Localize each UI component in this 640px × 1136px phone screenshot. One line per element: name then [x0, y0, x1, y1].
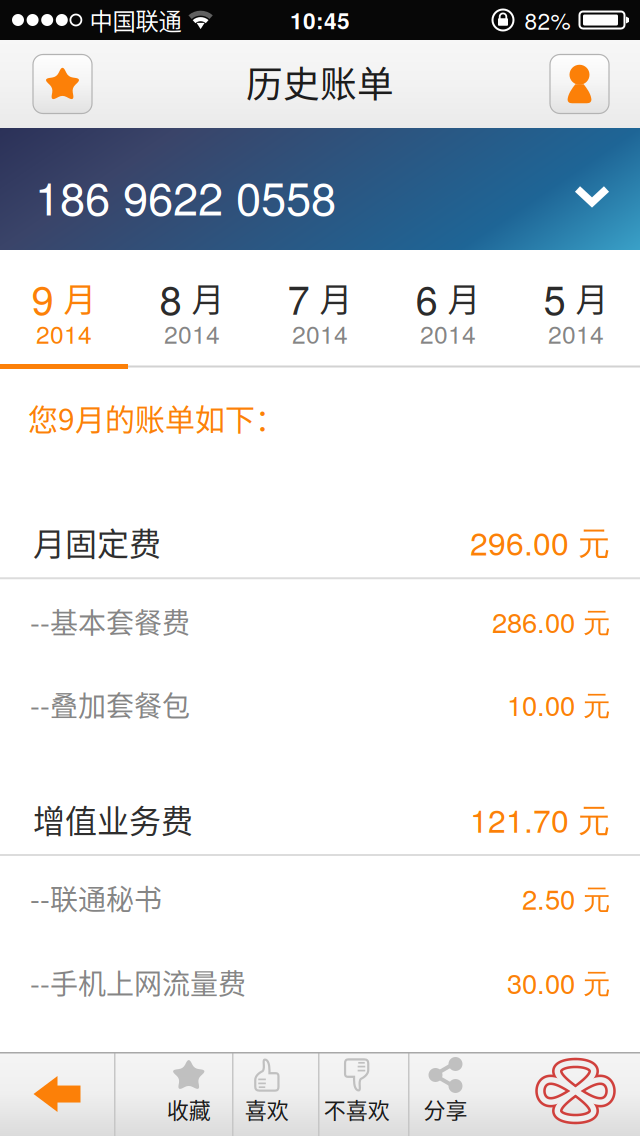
staticText: 月 [191, 274, 224, 321]
staticText: 186 9622 0558 [35, 163, 336, 228]
button[interactable]: 收藏 [115, 1052, 232, 1136]
staticText: 10:45 [290, 4, 350, 36]
staticText: 月 [319, 274, 352, 321]
staticText: 不喜欢 [324, 1093, 390, 1125]
staticText: 7 [287, 269, 309, 326]
staticText: 82% [524, 4, 570, 36]
staticText: --联通秘书 [30, 878, 162, 918]
staticText: 月 [447, 274, 480, 321]
button[interactable]: 5 [512, 250, 640, 369]
staticText: 10.00 元 [507, 685, 610, 724]
staticText: --基本套餐费 [30, 601, 190, 641]
staticText: 6 [415, 269, 437, 326]
staticText: --叠加套餐包 [30, 684, 190, 724]
button[interactable]: 9 [0, 250, 128, 369]
button[interactable]: 分享 [409, 1052, 499, 1136]
staticText: 月固定费 [33, 519, 161, 565]
staticText: 2014 [36, 315, 92, 351]
staticText: 2014 [420, 315, 476, 351]
staticText: 8 [159, 269, 181, 326]
button[interactable]: 收藏 [33, 54, 92, 113]
staticText: 121.70 元 [470, 796, 610, 842]
button[interactable]: 6 [384, 250, 512, 369]
staticText: 2.50 元 [522, 878, 610, 917]
staticText: 9 [31, 269, 53, 326]
staticText: 5 [543, 269, 565, 326]
staticText: 2014 [164, 315, 220, 351]
staticText: 喜欢 [245, 1093, 289, 1125]
staticText: 收藏 [167, 1093, 211, 1125]
staticText: 历史账单 [246, 55, 394, 108]
staticText: 月 [575, 274, 608, 321]
button[interactable]: 7 [256, 250, 384, 369]
staticText: 296.00 元 [470, 519, 610, 565]
staticText: 分享 [423, 1093, 467, 1125]
staticText: 286.00 元 [492, 602, 610, 641]
staticText: 月 [63, 274, 96, 321]
button[interactable]: 186 9622 0558 [0, 128, 640, 250]
button[interactable]: 返回 [0, 1052, 114, 1136]
button[interactable]: 喜欢 [233, 1052, 318, 1136]
button[interactable]: 8 [128, 250, 256, 369]
button[interactable]: 个人中心 [550, 54, 609, 113]
staticText: 30.00 元 [507, 963, 610, 1002]
staticText: --手机上网流量费 [30, 962, 246, 1002]
button[interactable]: 不喜欢 [319, 1052, 408, 1136]
staticText: 2014 [548, 315, 604, 351]
staticText: 2014 [292, 315, 348, 351]
staticText: 您9月的账单如下： [28, 396, 285, 439]
staticText: 中国联通 [89, 3, 181, 37]
staticText: 增值业务费 [33, 796, 193, 842]
